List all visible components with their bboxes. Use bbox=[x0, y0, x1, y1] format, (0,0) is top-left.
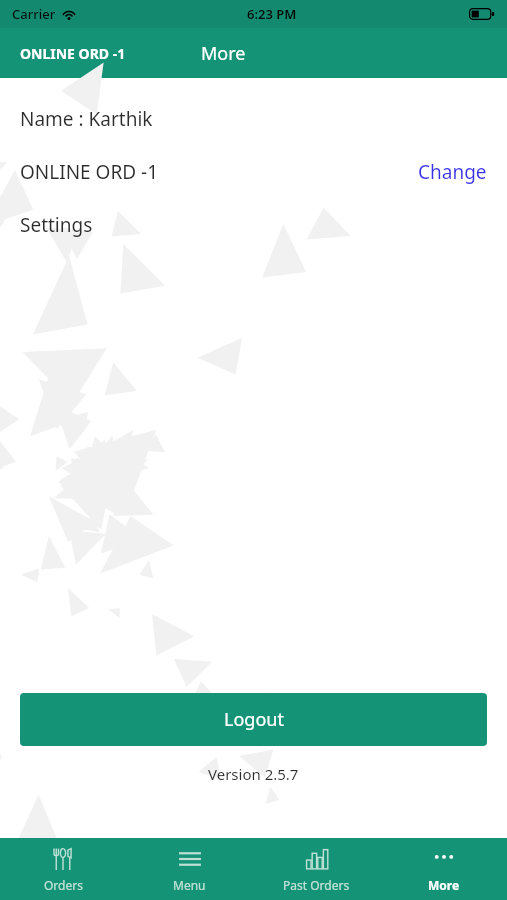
button[interactable]: ONLINE ORD -1 bbox=[20, 44, 126, 63]
button[interactable]: Name : Karthik bbox=[0, 92, 507, 145]
button[interactable]: Menu bbox=[126, 838, 253, 900]
staticText: ONLINE ORD -1 bbox=[20, 44, 126, 63]
button[interactable]: Logout bbox=[20, 693, 487, 746]
staticText: Name : Karthik bbox=[20, 106, 153, 132]
button[interactable]: Past Orders bbox=[253, 838, 380, 900]
staticText: Logout bbox=[224, 707, 284, 732]
staticText: 6:23 PM bbox=[247, 5, 297, 23]
button[interactable]: More bbox=[380, 838, 507, 900]
staticText: More bbox=[428, 877, 460, 893]
button[interactable]: ONLINE ORD -1 bbox=[0, 145, 507, 198]
button[interactable]: Settings bbox=[0, 198, 507, 251]
staticText: Version 2.5.7 bbox=[208, 764, 299, 784]
staticText: More bbox=[201, 41, 246, 66]
staticText: Change bbox=[418, 159, 487, 185]
staticText: ONLINE ORD -1 bbox=[20, 159, 159, 185]
staticText: Past Orders bbox=[283, 877, 350, 893]
button[interactable]: Orders bbox=[0, 838, 126, 900]
staticText: Orders bbox=[44, 877, 83, 893]
staticText: Menu bbox=[173, 877, 206, 893]
staticText: Carrier bbox=[12, 5, 56, 23]
staticText: Settings bbox=[20, 212, 93, 238]
